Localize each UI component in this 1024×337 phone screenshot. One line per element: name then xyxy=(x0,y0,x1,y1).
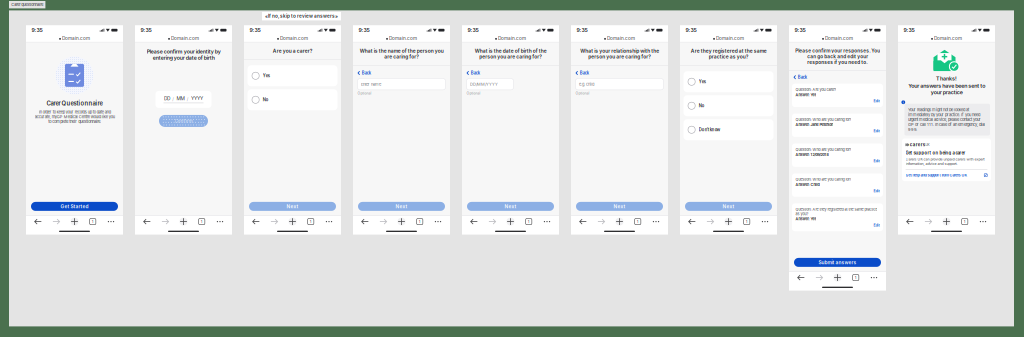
button[interactable]: Tabs xyxy=(86,216,100,227)
staticText: Question: Are you carer? xyxy=(795,87,836,92)
button[interactable]: Back xyxy=(140,216,154,227)
staticText: Optional xyxy=(575,91,589,95)
button[interactable]: Tabs xyxy=(631,216,645,227)
staticText: Next xyxy=(395,203,407,209)
button[interactable]: Tabs xyxy=(740,216,754,227)
button[interactable]: Tabs xyxy=(304,216,318,227)
button[interactable]: Back xyxy=(358,216,372,227)
button[interactable]: Forward xyxy=(921,216,935,227)
button[interactable]: Tabs xyxy=(195,216,209,227)
staticText: i xyxy=(903,100,904,104)
button[interactable]: Tabs xyxy=(958,216,972,227)
button[interactable]: Back xyxy=(575,70,589,76)
button[interactable]: No xyxy=(683,95,773,116)
staticText: Please confirm your identity by entering… xyxy=(146,48,220,61)
button[interactable]: More xyxy=(213,216,227,227)
staticText: 1 xyxy=(746,219,748,224)
button[interactable]: Tabs xyxy=(413,216,427,227)
button[interactable]: Back xyxy=(794,272,808,283)
staticText: Thanks! xyxy=(936,75,957,82)
button[interactable]: Back xyxy=(467,216,481,227)
button[interactable]: Forward xyxy=(485,216,499,227)
staticText: Don't know xyxy=(699,127,720,132)
staticText: Submit answers xyxy=(818,259,856,265)
staticText: No xyxy=(699,103,705,108)
button[interactable]: New tab xyxy=(285,216,299,227)
staticText: Are you a carer? xyxy=(272,48,312,54)
button[interactable]: Tabs xyxy=(849,272,863,283)
button[interactable]: More xyxy=(758,216,772,227)
button[interactable]: New tab xyxy=(612,216,626,227)
button[interactable]: New tab xyxy=(503,216,517,227)
button[interactable]: New tab xyxy=(721,216,735,227)
button[interactable]: Tabs xyxy=(522,216,536,227)
button[interactable]: Get help and support from Carers UK xyxy=(906,173,987,177)
button[interactable]: Forward xyxy=(376,216,390,227)
staticText: 1 xyxy=(201,219,203,224)
button[interactable]: Forward xyxy=(594,216,608,227)
button[interactable]: Next xyxy=(358,202,445,211)
staticText: / xyxy=(172,96,174,101)
button[interactable]: More xyxy=(976,216,990,227)
button[interactable]: More xyxy=(104,216,118,227)
button[interactable]: More xyxy=(649,216,663,227)
button[interactable]: More xyxy=(322,216,336,227)
button[interactable]: Yes xyxy=(683,71,773,92)
staticText: Carers UK can provide unpaid carers with… xyxy=(906,157,985,166)
button[interactable]: Back xyxy=(576,216,590,227)
staticText: Domain.com xyxy=(716,36,744,41)
button[interactable]: Back xyxy=(903,216,917,227)
staticText: DD xyxy=(164,96,170,101)
staticText: Edit xyxy=(874,159,880,163)
button[interactable]: Next xyxy=(576,202,663,211)
staticText: No xyxy=(263,97,269,102)
button[interactable]: Forward xyxy=(158,216,172,227)
staticText: 1 xyxy=(637,219,639,224)
button[interactable]: Back xyxy=(31,216,45,227)
staticText: «If no, skip to review answers» xyxy=(265,13,338,19)
button[interactable]: New tab xyxy=(939,216,953,227)
button[interactable]: Confirm xyxy=(159,115,208,127)
button[interactable]: New tab xyxy=(830,272,844,283)
staticText: Yes xyxy=(699,79,706,84)
button[interactable]: Next xyxy=(467,202,554,211)
staticText: Back xyxy=(471,70,480,75)
staticText: In order to keep your records up to date… xyxy=(34,109,114,124)
staticText: 9:35 xyxy=(576,27,587,33)
button[interactable]: New tab xyxy=(176,216,190,227)
button[interactable]: Next xyxy=(685,202,772,211)
button[interactable]: More xyxy=(867,272,881,283)
button[interactable]: New tab xyxy=(67,216,81,227)
button[interactable]: Forward xyxy=(49,216,63,227)
button[interactable]: Back xyxy=(249,216,263,227)
staticText: Domain.com xyxy=(62,36,90,41)
button[interactable]: Edit xyxy=(874,189,880,193)
staticText: 1 xyxy=(419,219,421,224)
button[interactable]: Edit xyxy=(874,99,880,103)
button[interactable]: Next xyxy=(249,202,336,211)
button[interactable]: Yes xyxy=(247,65,337,86)
button[interactable]: More xyxy=(540,216,554,227)
staticText: Get support on being a carer xyxy=(906,150,966,155)
staticText: 1 xyxy=(855,275,857,280)
button[interactable]: Edit xyxy=(874,159,880,163)
button[interactable]: Back xyxy=(793,74,807,80)
button[interactable]: No xyxy=(247,89,337,110)
staticText: carers xyxy=(910,142,925,147)
button[interactable]: Forward xyxy=(703,216,717,227)
button[interactable]: Back xyxy=(357,70,371,76)
button[interactable]: Submit answers xyxy=(794,258,881,267)
button[interactable]: Back xyxy=(685,216,699,227)
button[interactable]: New tab xyxy=(394,216,408,227)
button[interactable]: Back xyxy=(466,70,480,76)
button[interactable]: Get Started xyxy=(31,202,118,211)
staticText: Yes xyxy=(263,73,270,78)
button[interactable]: More xyxy=(431,216,445,227)
button[interactable]: Forward xyxy=(267,216,281,227)
staticText: DD/MM/YYYY xyxy=(470,82,498,87)
staticText: Domain.com xyxy=(825,36,853,41)
button[interactable]: Forward xyxy=(812,272,826,283)
button[interactable]: Don't know xyxy=(683,119,773,140)
button[interactable]: Edit xyxy=(874,129,880,133)
button[interactable]: Edit xyxy=(874,223,880,227)
